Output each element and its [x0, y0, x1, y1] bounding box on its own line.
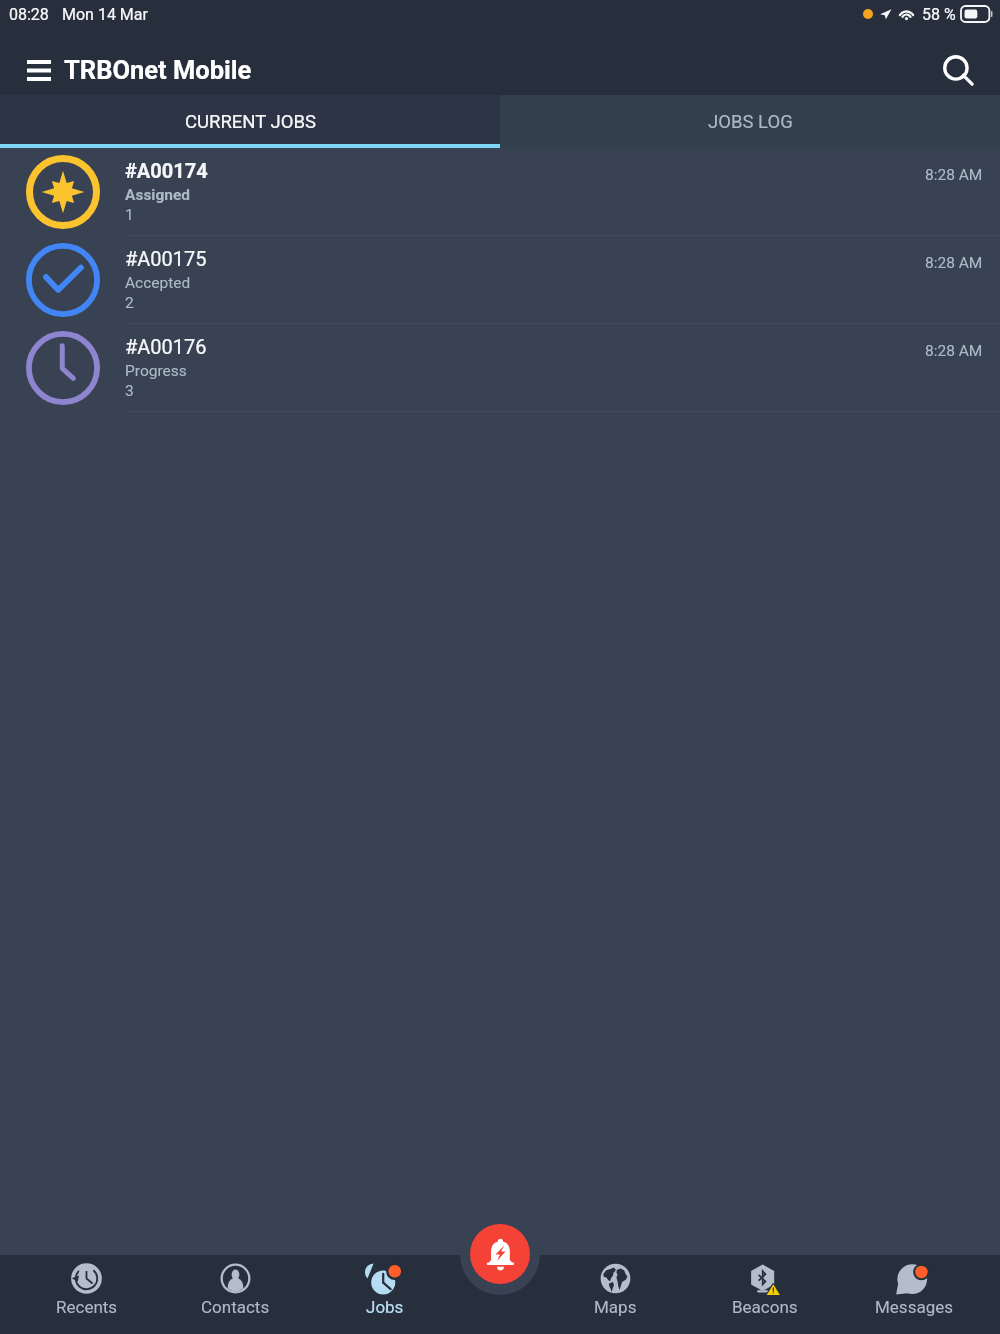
staticText: Recents	[56, 1297, 118, 1317]
staticText: Assigned	[125, 186, 191, 204]
staticText: 08:28	[9, 5, 49, 24]
staticText: Mon 14 Mar	[62, 5, 148, 24]
button[interactable]: JOBS LOG	[500, 95, 1000, 148]
staticText: 8:28 AM	[925, 166, 983, 184]
staticText: #A00175	[125, 247, 207, 270]
staticText: 58 %	[922, 5, 956, 24]
staticText: Maps	[594, 1297, 637, 1317]
staticText: Jobs	[366, 1297, 404, 1317]
staticText: Accepted	[125, 274, 191, 292]
button[interactable]: Send emergency alarm	[470, 1224, 530, 1284]
button[interactable]: #A00175	[0, 236, 1000, 323]
button[interactable]: Messages	[839, 1255, 988, 1334]
staticText: Messages	[875, 1297, 953, 1317]
staticText: 2	[125, 294, 134, 312]
button[interactable]: Open navigation drawer	[0, 28, 64, 95]
staticText: Contacts	[201, 1297, 270, 1317]
staticText: #A00176	[125, 335, 207, 358]
button[interactable]: Maps	[541, 1255, 690, 1334]
staticText: 1	[125, 206, 134, 224]
button[interactable]: Search	[932, 28, 1000, 95]
button[interactable]: Beacons	[690, 1255, 839, 1334]
staticText: 8:28 AM	[925, 254, 983, 272]
staticText: TRBOnet Mobile	[64, 55, 252, 85]
staticText: CURRENT JOBS	[185, 111, 316, 133]
button[interactable]: Jobs	[310, 1255, 459, 1334]
button[interactable]: Contacts	[161, 1255, 310, 1334]
staticText: JOBS LOG	[708, 111, 793, 133]
staticText: Progress	[125, 362, 187, 380]
staticText: Beacons	[732, 1297, 798, 1317]
button[interactable]: #A00174	[0, 148, 1000, 235]
staticText: #A00174	[125, 159, 208, 182]
staticText: 3	[125, 382, 134, 400]
staticText: 8:28 AM	[925, 342, 983, 360]
button[interactable]: CURRENT JOBS	[0, 95, 500, 148]
button[interactable]: #A00176	[0, 324, 1000, 411]
button[interactable]: Recents	[12, 1255, 161, 1334]
